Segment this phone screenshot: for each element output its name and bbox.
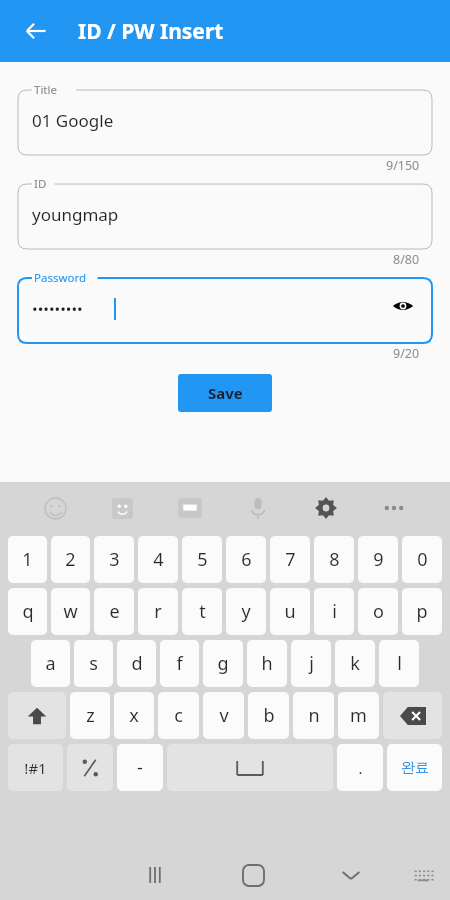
button[interactable]: c xyxy=(158,692,199,739)
staticText: j xyxy=(309,651,314,676)
staticText: z xyxy=(86,703,95,728)
button[interactable]: z xyxy=(70,692,110,739)
staticText: 9/150 xyxy=(386,157,420,174)
staticText: !#1 xyxy=(24,758,47,778)
button[interactable]: n xyxy=(293,692,334,739)
staticText: p xyxy=(416,599,428,624)
button[interactable]: Back xyxy=(14,9,58,53)
button[interactable]: More options xyxy=(360,482,428,534)
staticText: 1 xyxy=(22,547,33,572)
button[interactable]: Home xyxy=(204,850,302,900)
button[interactable]: o xyxy=(358,588,398,635)
staticText: n xyxy=(308,703,320,728)
staticText: 4 xyxy=(153,547,164,572)
button[interactable]: - xyxy=(117,744,163,791)
staticText: i xyxy=(332,599,337,624)
button[interactable]: r xyxy=(138,588,178,635)
button[interactable]: t xyxy=(182,588,222,635)
button[interactable]: 6 xyxy=(226,536,266,583)
staticText: w xyxy=(63,599,78,624)
button[interactable]: . xyxy=(337,744,383,791)
staticText: 9 xyxy=(373,547,384,572)
button[interactable]: d xyxy=(117,640,156,687)
staticText: 완료 xyxy=(401,759,429,777)
staticText: f xyxy=(176,651,183,676)
button[interactable]: 3 xyxy=(94,536,134,583)
button[interactable]: 0 xyxy=(402,536,442,583)
button[interactable]: 5 xyxy=(182,536,222,583)
staticText: Save xyxy=(208,383,243,403)
button[interactable]: i xyxy=(314,588,354,635)
button[interactable]: Voice input xyxy=(224,482,292,534)
staticText: v xyxy=(219,703,229,728)
button[interactable]: 4 xyxy=(138,536,178,583)
button[interactable]: e xyxy=(94,588,134,635)
button[interactable]: b xyxy=(248,692,289,739)
button[interactable]: l xyxy=(379,640,419,687)
staticText: c xyxy=(174,703,183,728)
button[interactable]: s xyxy=(74,640,113,687)
staticText: k xyxy=(350,651,360,676)
staticText: s xyxy=(89,651,98,676)
button[interactable]: y xyxy=(226,588,266,635)
staticText: q xyxy=(22,599,34,624)
button[interactable]: w xyxy=(51,588,90,635)
button[interactable]: g xyxy=(203,640,243,687)
button[interactable]: p xyxy=(402,588,442,635)
staticText: youngmap xyxy=(32,203,119,226)
staticText: d xyxy=(131,651,143,676)
staticText: ••••••••• xyxy=(32,299,83,319)
button[interactable]: Space xyxy=(167,744,333,791)
staticText: b xyxy=(263,703,275,728)
staticText: 2 xyxy=(65,547,76,572)
button[interactable]: Save xyxy=(178,374,272,412)
button[interactable]: !#1 xyxy=(8,744,63,791)
button[interactable]: u xyxy=(270,588,310,635)
button[interactable]: Stickers xyxy=(89,482,156,534)
button[interactable]: k xyxy=(335,640,375,687)
button[interactable]: x xyxy=(114,692,154,739)
staticText: 7 xyxy=(285,547,296,572)
button[interactable]: Show password xyxy=(386,289,420,323)
button[interactable]: h xyxy=(247,640,287,687)
button[interactable]: Title xyxy=(18,80,432,155)
staticText: 0 xyxy=(417,547,428,572)
button[interactable]: 완료 xyxy=(387,744,442,791)
button[interactable]: GIF xyxy=(156,482,224,534)
staticText: ID / PW Insert xyxy=(78,17,224,46)
button[interactable]: Change keyboard xyxy=(400,850,446,900)
button[interactable]: Hide keyboard xyxy=(302,850,400,900)
staticText: 8 xyxy=(329,547,340,572)
staticText: e xyxy=(109,599,120,624)
button[interactable]: f xyxy=(160,640,199,687)
staticText: y xyxy=(241,599,251,624)
staticText: ID xyxy=(34,176,47,192)
button[interactable]: Shift xyxy=(8,692,66,739)
staticText: h xyxy=(261,651,273,676)
button[interactable]: Password xyxy=(18,268,432,343)
staticText: o xyxy=(373,599,384,624)
staticText: 01 Google xyxy=(32,109,114,132)
button[interactable]: m xyxy=(338,692,379,739)
button[interactable]: 7 xyxy=(270,536,310,583)
button[interactable]: 1 xyxy=(8,536,47,583)
button[interactable]: Korean English toggle xyxy=(67,744,113,791)
button[interactable]: q xyxy=(8,588,47,635)
button[interactable]: j xyxy=(291,640,331,687)
button[interactable]: Emoji xyxy=(22,482,89,534)
button[interactable]: ID xyxy=(18,174,432,249)
button[interactable]: Recents xyxy=(106,850,204,900)
staticText: u xyxy=(284,599,296,624)
staticText: 5 xyxy=(197,547,208,572)
staticText: 6 xyxy=(241,547,252,572)
button[interactable]: Backspace xyxy=(383,692,442,739)
button[interactable]: Settings xyxy=(292,482,360,534)
staticText: g xyxy=(217,651,229,676)
button[interactable]: 2 xyxy=(51,536,90,583)
staticText: 3 xyxy=(109,547,120,572)
staticText: r xyxy=(154,599,162,624)
button[interactable]: 9 xyxy=(358,536,398,583)
button[interactable]: 8 xyxy=(314,536,354,583)
button[interactable]: a xyxy=(31,640,70,687)
button[interactable]: v xyxy=(203,692,244,739)
